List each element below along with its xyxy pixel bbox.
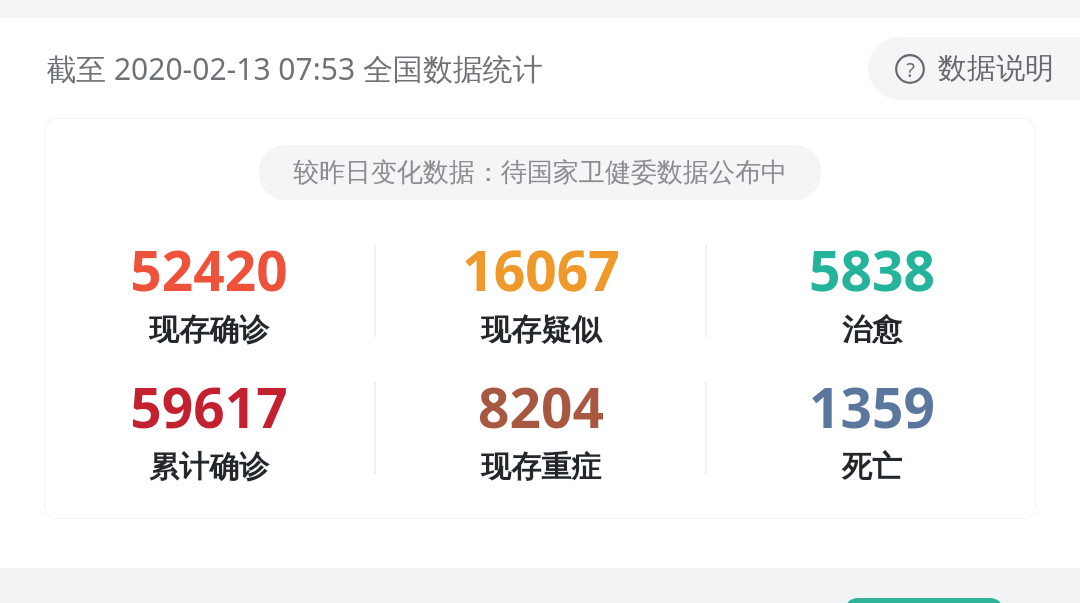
staticText: 死亡 bbox=[842, 448, 902, 486]
staticText: 截至 2020-02-13 07:53 全国数据统计 bbox=[46, 48, 543, 89]
staticText: 5838 bbox=[809, 232, 935, 307]
staticText: 数据说明 bbox=[938, 50, 1054, 87]
staticText: 1359 bbox=[809, 369, 935, 444]
staticText: 治愈 bbox=[842, 311, 902, 349]
staticText: 8204 bbox=[478, 369, 604, 444]
staticText: 现存重症 bbox=[481, 448, 601, 486]
staticText: 累计确诊 bbox=[149, 448, 269, 486]
button[interactable]: 8204 bbox=[376, 369, 705, 486]
staticText: 较昨日变化数据：待国家卫健委数据公布中 bbox=[293, 156, 787, 189]
button[interactable]: 59617 bbox=[44, 369, 374, 486]
staticText: 52420 bbox=[130, 232, 288, 307]
staticText: ? bbox=[906, 56, 915, 83]
staticText: 16067 bbox=[462, 232, 620, 307]
button[interactable]: 1359 bbox=[707, 369, 1036, 486]
button[interactable]: 疫情地图 bbox=[844, 598, 1004, 603]
staticText: 59617 bbox=[130, 369, 288, 444]
other: 数据说明 bbox=[894, 53, 926, 85]
button[interactable]: 16067 bbox=[376, 232, 705, 349]
button[interactable]: 数据说明 bbox=[868, 37, 1080, 100]
button[interactable]: 较昨日变化数据：待国家卫健委数据公布中 bbox=[259, 145, 821, 200]
button[interactable]: 5838 bbox=[707, 232, 1036, 349]
staticText: 现存疑似 bbox=[481, 311, 601, 349]
staticText: 现存确诊 bbox=[149, 311, 269, 349]
button[interactable]: 52420 bbox=[44, 232, 374, 349]
